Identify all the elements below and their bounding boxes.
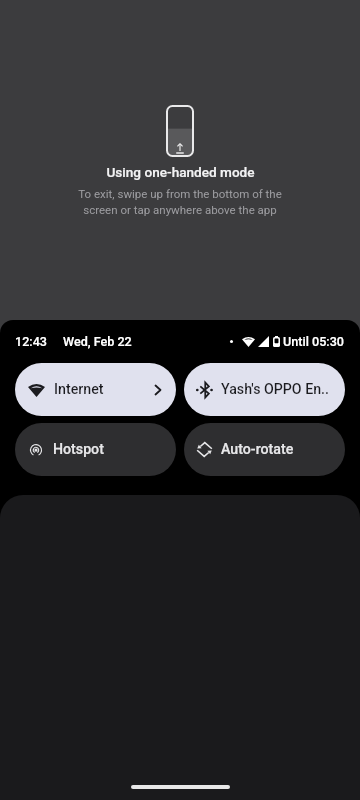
staticText: Until 05:30 <box>283 334 344 349</box>
button[interactable]: Internet <box>15 363 176 416</box>
button[interactable]: Auto-rotate <box>184 423 345 476</box>
button[interactable]: Yash's OPPO En.. <box>184 363 345 416</box>
staticText: 12:43 <box>15 334 47 349</box>
staticText: Hotspot <box>53 441 161 458</box>
staticText: To exit, swipe up from the bottom of the… <box>78 187 282 216</box>
staticText: Using one-handed mode <box>106 164 255 180</box>
staticText: Internet <box>54 381 151 398</box>
staticText: Auto-rotate <box>221 441 330 458</box>
staticText: Yash's OPPO En.. <box>221 381 330 398</box>
button[interactable]: Hotspot <box>15 423 176 476</box>
staticText: Wed, Feb 22 <box>63 334 132 349</box>
